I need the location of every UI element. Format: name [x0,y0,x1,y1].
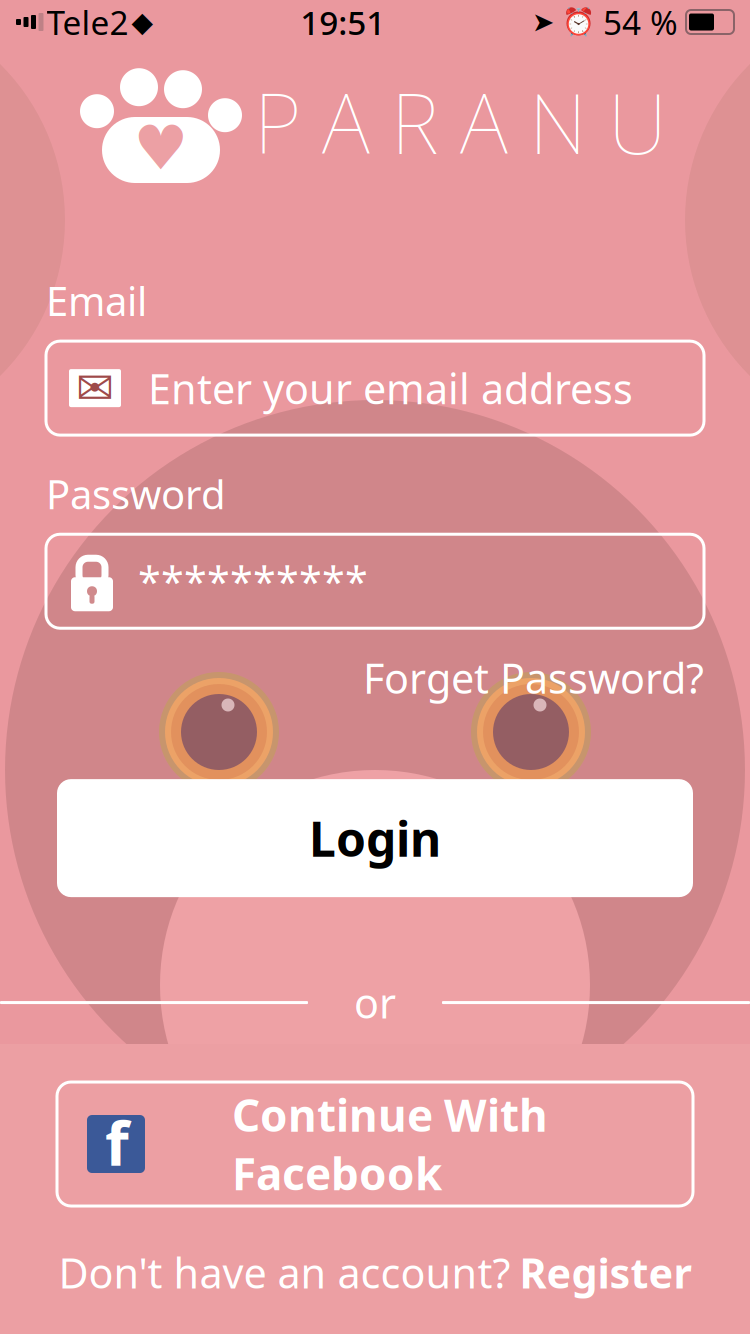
staticText: Continue With Facebook [232,1086,548,1202]
staticText: Enter your email address [148,361,633,416]
staticText: ********** [138,554,368,609]
staticText: Email [46,274,147,327]
staticText: 19:51 [300,0,385,44]
button[interactable]: ********** [46,534,704,628]
staticText: ➤ [532,7,554,37]
staticText: ♥ [133,113,188,183]
staticText: 54 % [603,0,678,44]
staticText: Don't have an account? [58,1245,510,1300]
staticText: ◆ [131,6,153,38]
button[interactable]: f [57,1082,693,1206]
staticText: Register [519,1245,691,1300]
button[interactable]: Forget Password? [363,650,704,705]
staticText: ⏰ [562,7,595,37]
staticText: or [354,975,396,1030]
button[interactable]: Don't have an account? [58,1245,691,1300]
staticText: Forget Password? [363,650,704,705]
button[interactable]: ✉ [46,341,704,435]
staticText: Login [309,806,441,870]
staticText: P A R A N U [254,67,667,177]
staticText: Tele2 [46,0,128,44]
staticText: Password [46,467,226,520]
staticText: f [105,1101,129,1183]
button[interactable]: Login [57,779,693,897]
staticText: ✉ [76,362,114,414]
